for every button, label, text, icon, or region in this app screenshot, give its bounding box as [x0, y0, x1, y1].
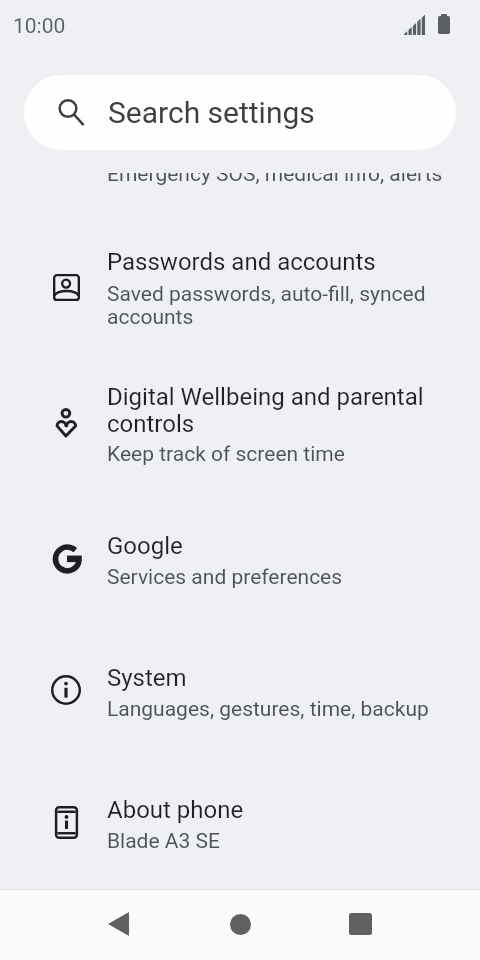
staticText: About phone: [107, 796, 459, 824]
staticText: Digital Wellbeing and parental controls: [107, 383, 459, 438]
staticText: Keep track of screen time: [107, 442, 459, 467]
staticText: Google: [107, 532, 459, 560]
staticText: Emergency SOS, medical info, alerts: [107, 173, 443, 187]
button[interactable]: System: [0, 630, 480, 763]
staticText: 10:00: [13, 14, 66, 39]
staticText: Saved passwords, auto-fill, synced accou…: [107, 282, 459, 329]
button[interactable]: Passwords and accounts: [0, 215, 480, 348]
button[interactable]: Home: [204, 890, 277, 960]
button[interactable]: Search settings: [24, 75, 456, 150]
staticText: Passwords and accounts: [107, 248, 459, 276]
staticText: Blade A3 SE: [107, 829, 459, 854]
button[interactable]: Digital Wellbeing and parental controls: [0, 349, 480, 482]
button[interactable]: Recent apps: [324, 890, 397, 960]
staticText: System: [107, 664, 459, 692]
button[interactable]: Back: [82, 890, 155, 960]
button[interactable]: About phone: [0, 762, 480, 890]
button[interactable]: Google: [0, 498, 480, 631]
staticText: Services and preferences: [107, 565, 459, 590]
staticText: Languages, gestures, time, backup: [107, 697, 459, 722]
staticText: Search settings: [108, 95, 315, 130]
